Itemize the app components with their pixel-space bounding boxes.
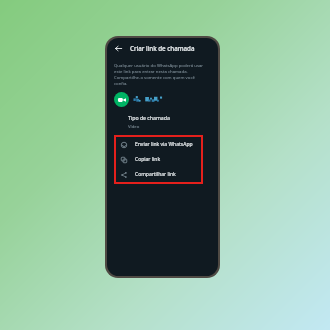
staticText: Vídeo bbox=[128, 123, 140, 129]
staticText: Tipo de chamada bbox=[128, 114, 170, 121]
button[interactable]: Back bbox=[112, 42, 124, 54]
staticText: Criar link de chamada bbox=[130, 44, 195, 52]
button[interactable]: Copiar link bbox=[114, 152, 203, 167]
staticText: Qualquer usuário do WhatsApp poderá usar… bbox=[114, 62, 209, 86]
staticText: Copiar link bbox=[135, 156, 161, 163]
staticText: Compartilhar link bbox=[135, 171, 176, 178]
button[interactable]: Compartilhar link bbox=[114, 167, 203, 182]
button[interactable]: Tipo de chamada bbox=[107, 114, 218, 129]
button[interactable]: Enviar link via WhatsApp bbox=[114, 137, 203, 152]
staticText: Enviar link via WhatsApp bbox=[135, 141, 193, 148]
button[interactable] bbox=[114, 92, 218, 107]
